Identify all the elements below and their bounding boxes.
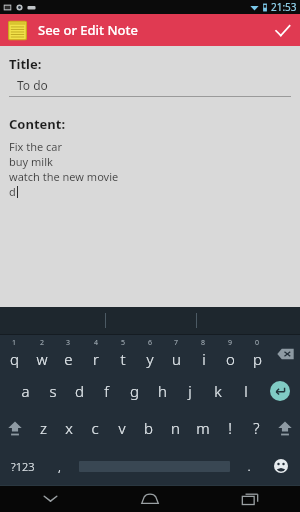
button[interactable]: Shift	[0, 409, 30, 447]
staticText: n	[171, 418, 180, 438]
staticText: a	[21, 381, 30, 401]
button[interactable]: ?123	[0, 447, 46, 485]
button[interactable]: 6	[136, 335, 163, 372]
staticText: 21:53	[271, 0, 297, 14]
staticText: 6	[148, 338, 153, 348]
button[interactable]: 7	[163, 335, 190, 372]
staticText: 8	[201, 338, 206, 348]
staticText: 3	[66, 338, 71, 348]
staticText: buy milk	[9, 154, 53, 169]
button[interactable]: a	[12, 372, 39, 409]
staticText: ,	[58, 457, 61, 475]
staticText: !	[228, 418, 232, 438]
button[interactable]: x	[56, 409, 82, 447]
staticText: ?123	[11, 459, 35, 474]
staticText: e	[64, 349, 73, 369]
button[interactable]: To do	[9, 77, 291, 97]
staticText: 7	[174, 338, 179, 348]
staticText: v	[118, 418, 126, 438]
button[interactable]: Hide keyboard	[0, 485, 100, 512]
staticText: k	[214, 381, 222, 401]
button[interactable]: v	[108, 409, 135, 447]
staticText: b	[144, 418, 153, 438]
button[interactable]: ,	[46, 447, 72, 485]
button[interactable]: s	[39, 372, 66, 409]
button[interactable]: Emoji	[262, 447, 300, 485]
staticText: c	[91, 418, 99, 438]
staticText: 0	[255, 338, 260, 348]
button[interactable]: !	[216, 409, 243, 447]
button[interactable]: ?	[243, 409, 270, 447]
staticText: t	[120, 349, 126, 369]
button[interactable]: l	[232, 372, 260, 409]
button[interactable]: 9	[217, 335, 244, 372]
button[interactable]: 4	[82, 335, 109, 372]
staticText: q	[10, 349, 19, 369]
button[interactable]: 2	[28, 335, 55, 372]
staticText: .	[247, 457, 251, 475]
button[interactable]: 5	[109, 335, 136, 372]
button[interactable]: 3	[55, 335, 82, 372]
button[interactable]: .	[236, 447, 262, 485]
button[interactable]: b	[135, 409, 162, 447]
staticText: w	[36, 349, 48, 369]
staticText: Fix the car	[9, 139, 63, 154]
staticText: 9	[228, 338, 233, 348]
button[interactable]: Home	[100, 485, 200, 512]
staticText: d	[75, 381, 84, 401]
staticText: Title:	[9, 55, 42, 73]
staticText: watch the new movie	[9, 169, 119, 184]
button[interactable]: 8	[190, 335, 217, 372]
button[interactable]: g	[120, 372, 148, 409]
button[interactable]: Fix the car	[9, 139, 291, 307]
staticText: p	[253, 349, 262, 369]
staticText: g	[130, 381, 139, 401]
button[interactable]: 0	[244, 335, 271, 372]
button[interactable]: d	[66, 372, 93, 409]
button[interactable]: Shift	[270, 409, 300, 447]
staticText: l	[244, 381, 248, 401]
staticText: Content:	[9, 115, 66, 133]
staticText: s	[49, 381, 57, 401]
button[interactable]: 1	[0, 335, 28, 372]
button[interactable]: Delete	[271, 335, 300, 372]
button[interactable]: Recent apps	[200, 485, 300, 512]
staticText: m	[196, 418, 210, 438]
button[interactable]: Space	[72, 447, 236, 485]
button[interactable]: Enter	[260, 372, 300, 409]
staticText: To do	[17, 77, 48, 93]
button[interactable]: z	[30, 409, 56, 447]
staticText: 2	[40, 338, 45, 348]
staticText: d	[9, 184, 16, 199]
staticText: f	[104, 381, 109, 401]
staticText: y	[146, 349, 154, 369]
staticText: See or Edit Note	[38, 21, 138, 39]
staticText: z	[40, 418, 47, 438]
staticText: h	[158, 381, 167, 401]
button[interactable]: f	[93, 372, 120, 409]
button[interactable]: k	[204, 372, 232, 409]
button[interactable]: h	[148, 372, 176, 409]
staticText: j	[188, 381, 192, 401]
button[interactable]: m	[189, 409, 216, 447]
staticText: o	[226, 349, 235, 369]
button[interactable]: n	[162, 409, 189, 447]
staticText: i	[202, 349, 206, 369]
button[interactable]: j	[176, 372, 204, 409]
staticText: u	[172, 349, 181, 369]
staticText: 4	[94, 338, 99, 348]
staticText: ?	[253, 418, 260, 438]
staticText: 1	[12, 338, 17, 348]
button[interactable]: Save note	[264, 14, 300, 46]
staticText: r	[93, 349, 99, 369]
staticText: x	[65, 418, 73, 438]
staticText: 5	[121, 338, 126, 348]
button[interactable]: c	[82, 409, 108, 447]
